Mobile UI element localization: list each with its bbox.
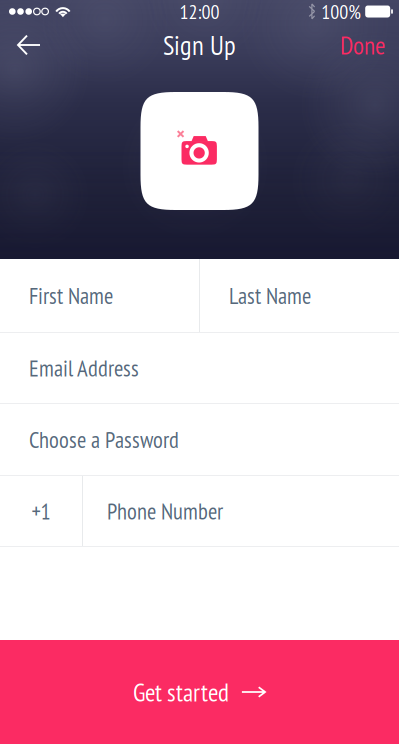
staticText: Get started [133, 676, 229, 708]
staticText: Sign Up [163, 28, 236, 62]
staticText: Done [340, 29, 385, 61]
staticText: +1 [31, 496, 50, 526]
button[interactable]: Choose a Password [0, 404, 399, 475]
button[interactable]: Add profile photo [140, 92, 258, 210]
button[interactable]: +1 [0, 476, 82, 546]
button[interactable]: Phone Number [83, 476, 399, 546]
staticText: 12:00 [179, 0, 219, 24]
staticText: Choose a Password [29, 425, 179, 454]
button[interactable]: Get started [0, 640, 399, 744]
button[interactable]: Done [326, 23, 399, 67]
staticText: First Name [29, 281, 113, 310]
button[interactable]: Email Address [0, 333, 399, 403]
button[interactable]: First Name [0, 259, 199, 332]
staticText: Last Name [229, 281, 311, 310]
button[interactable]: Back [0, 23, 58, 67]
button[interactable]: Last Name [200, 259, 399, 332]
staticText: Email Address [29, 353, 139, 383]
staticText: 100% [321, 0, 361, 24]
staticText: Phone Number [107, 496, 223, 526]
